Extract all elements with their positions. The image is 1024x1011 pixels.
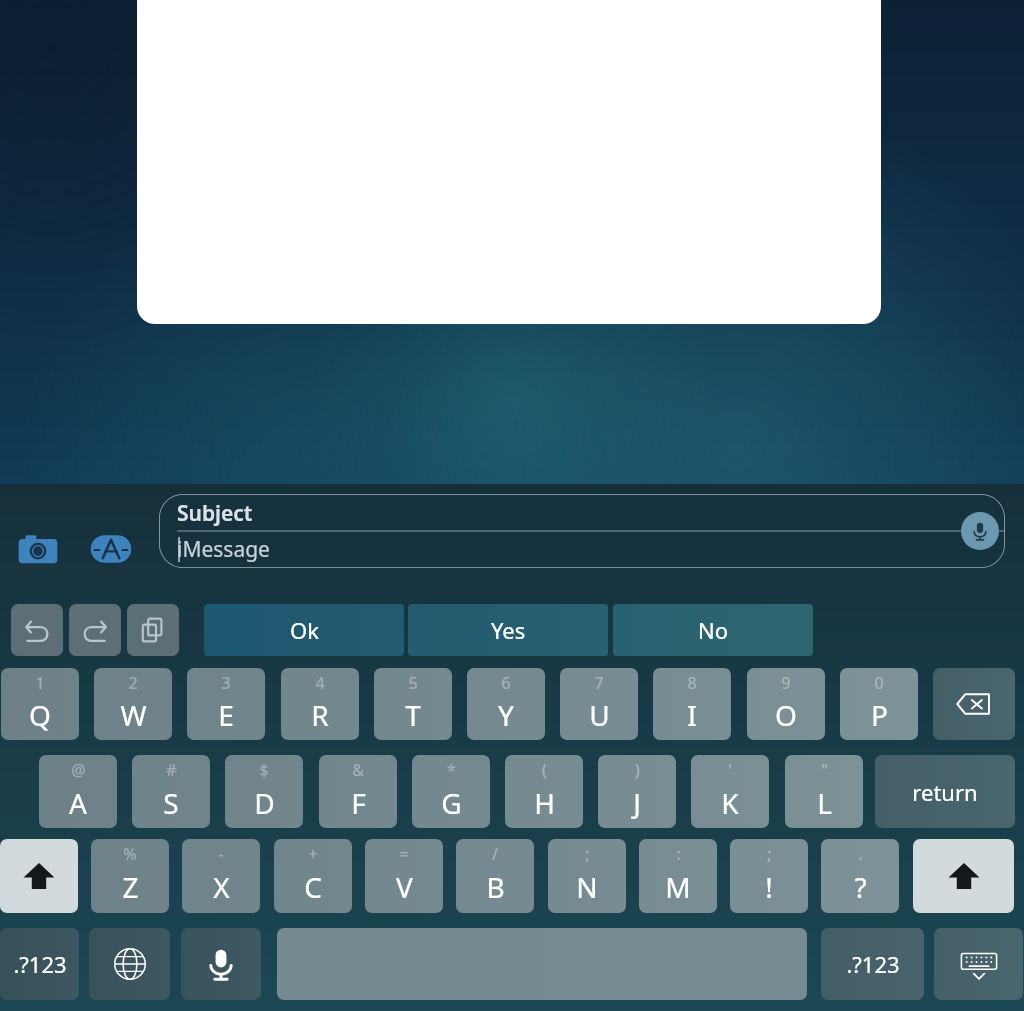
button[interactable]: .?123 bbox=[0, 928, 79, 1000]
button[interactable]: Shift bbox=[0, 839, 78, 913]
staticText: @ bbox=[71, 759, 86, 781]
staticText: Y bbox=[498, 696, 514, 734]
staticText: C bbox=[304, 868, 322, 906]
button[interactable]: 0 bbox=[840, 668, 918, 740]
staticText: Yes bbox=[491, 615, 526, 645]
staticText: F bbox=[351, 784, 366, 822]
staticText: H bbox=[534, 784, 555, 822]
button[interactable]: 9 bbox=[747, 668, 825, 740]
button[interactable]: 2 bbox=[94, 668, 172, 740]
staticText: W bbox=[120, 696, 147, 734]
staticText: V bbox=[396, 868, 413, 906]
button[interactable]: ( bbox=[505, 755, 583, 828]
button[interactable]: * bbox=[412, 755, 490, 828]
button[interactable]: ) bbox=[598, 755, 676, 828]
staticText: iMessage bbox=[177, 535, 270, 564]
staticText: 6 bbox=[501, 672, 511, 694]
staticText: M bbox=[665, 868, 691, 906]
button[interactable]: Yes bbox=[408, 604, 608, 656]
button[interactable]: Paste bbox=[127, 604, 179, 656]
button[interactable]: % bbox=[91, 839, 169, 913]
button[interactable] bbox=[137, 0, 881, 324]
button[interactable]: 3 bbox=[187, 668, 265, 740]
staticText: L bbox=[817, 784, 832, 822]
staticText: U bbox=[589, 696, 610, 734]
staticText: 8 bbox=[687, 672, 697, 694]
staticText: A bbox=[69, 784, 87, 822]
button[interactable]: 4 bbox=[281, 668, 359, 740]
button[interactable]: Apps bbox=[87, 525, 135, 573]
staticText: K bbox=[721, 784, 739, 822]
button[interactable]: ; bbox=[548, 839, 626, 913]
button[interactable]: + bbox=[274, 839, 352, 913]
staticText: X bbox=[213, 868, 230, 906]
button[interactable]: = bbox=[365, 839, 443, 913]
button[interactable]: Camera bbox=[14, 525, 62, 573]
button[interactable]: - bbox=[182, 839, 260, 913]
staticText: * bbox=[447, 759, 456, 781]
staticText: J bbox=[633, 784, 641, 822]
staticText: N bbox=[576, 868, 598, 906]
staticText: return bbox=[912, 777, 978, 807]
button[interactable]: .?123 bbox=[821, 928, 924, 1000]
button[interactable]: No bbox=[613, 604, 813, 656]
button[interactable]: / bbox=[456, 839, 534, 913]
button[interactable]: ' bbox=[691, 755, 769, 828]
button[interactable]: # bbox=[132, 755, 210, 828]
staticText: 2 bbox=[128, 672, 138, 694]
staticText: .?123 bbox=[846, 949, 900, 979]
staticText: O bbox=[775, 696, 797, 734]
staticText: % bbox=[123, 843, 137, 865]
staticText: R bbox=[311, 696, 329, 734]
button[interactable]: Undo bbox=[11, 604, 63, 656]
staticText: ( bbox=[542, 759, 547, 781]
staticText: Ok bbox=[290, 615, 319, 645]
button[interactable]: . bbox=[821, 839, 899, 913]
staticText: " bbox=[821, 759, 828, 781]
button[interactable]: & bbox=[319, 755, 397, 828]
button[interactable]: Shift bbox=[913, 839, 1014, 913]
staticText: E bbox=[218, 696, 234, 734]
button[interactable]: 6 bbox=[467, 668, 545, 740]
staticText: 3 bbox=[221, 672, 231, 694]
staticText: - bbox=[218, 843, 224, 865]
staticText: T bbox=[405, 696, 421, 734]
button[interactable]: ; bbox=[730, 839, 808, 913]
button[interactable]: Hide keyboard bbox=[934, 928, 1023, 1000]
staticText: I bbox=[687, 696, 697, 734]
staticText: Z bbox=[122, 868, 139, 906]
staticText: .?123 bbox=[13, 949, 67, 979]
button[interactable]: @ bbox=[39, 755, 117, 828]
staticText: 0 bbox=[874, 672, 884, 694]
staticText: ' bbox=[728, 759, 732, 781]
button[interactable]: Ok bbox=[204, 604, 404, 656]
button[interactable]: " bbox=[785, 755, 863, 828]
button[interactable]: 8 bbox=[653, 668, 731, 740]
button[interactable]: Change keyboard bbox=[89, 928, 170, 1000]
button[interactable]: : bbox=[639, 839, 717, 913]
staticText: ! bbox=[765, 868, 773, 906]
staticText: . bbox=[858, 843, 863, 865]
button[interactable]: 1 bbox=[1, 668, 79, 740]
button[interactable]: Dictate bbox=[181, 928, 261, 1000]
button[interactable]: 7 bbox=[560, 668, 638, 740]
staticText: # bbox=[166, 759, 177, 781]
button[interactable]: 5 bbox=[374, 668, 452, 740]
staticText: D bbox=[254, 784, 275, 822]
staticText: Q bbox=[29, 696, 51, 734]
button[interactable]: Backspace bbox=[933, 668, 1015, 740]
staticText: 1 bbox=[35, 672, 45, 694]
button[interactable]: return bbox=[875, 755, 1015, 828]
staticText: : bbox=[676, 843, 681, 865]
button[interactable]: $ bbox=[225, 755, 303, 828]
staticText: & bbox=[352, 759, 364, 781]
button[interactable]: Subject bbox=[159, 494, 1005, 568]
staticText: 4 bbox=[315, 672, 325, 694]
staticText: 5 bbox=[408, 672, 418, 694]
button[interactable]: Redo bbox=[69, 604, 121, 656]
button[interactable]: Dictate bbox=[961, 512, 999, 550]
staticText: 9 bbox=[781, 672, 791, 694]
staticText: + bbox=[308, 843, 318, 865]
staticText: ; bbox=[585, 843, 590, 865]
